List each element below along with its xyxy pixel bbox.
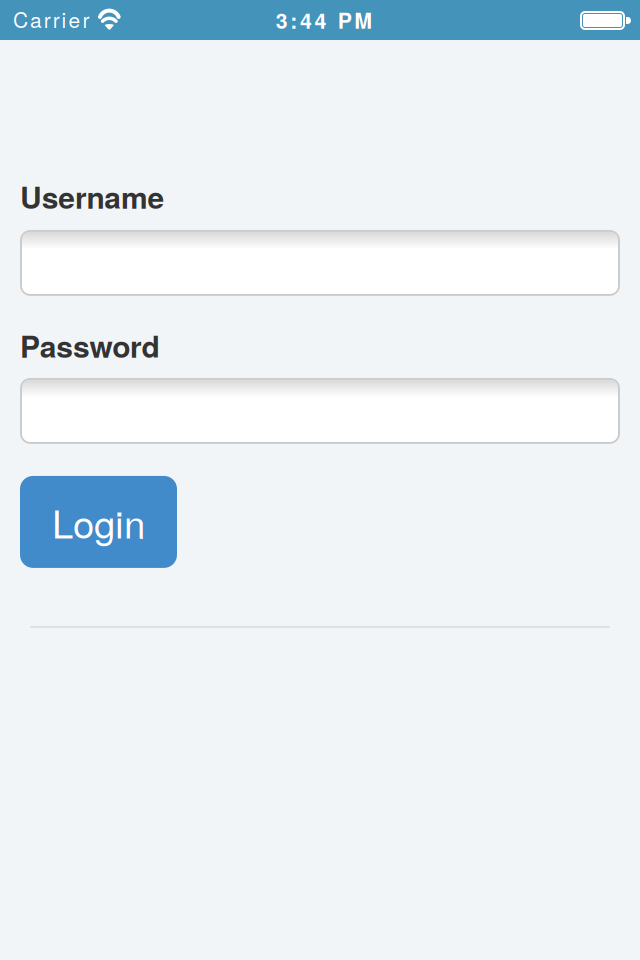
staticText: 3:44 PM — [276, 5, 372, 35]
button[interactable]: Login — [20, 476, 177, 568]
button[interactable]: Username text field — [20, 230, 620, 296]
staticText: Password — [20, 324, 160, 367]
staticText: Login — [52, 494, 145, 549]
staticText: Carrier — [13, 4, 97, 34]
staticText: Username — [20, 175, 165, 218]
button[interactable]: Password text field — [20, 378, 620, 444]
